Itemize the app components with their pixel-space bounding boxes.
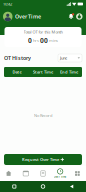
staticText: Total OT for this Month xyxy=(23,29,62,34)
staticText: mins xyxy=(48,38,58,43)
button[interactable]: Leave xyxy=(17,166,34,181)
button[interactable]: More xyxy=(69,166,86,181)
staticText: 10:42 xyxy=(3,1,14,7)
button[interactable]: Request Over Time xyxy=(4,154,82,165)
staticText: End Time xyxy=(60,69,78,75)
button[interactable]: Log out xyxy=(76,13,83,20)
staticText: Date xyxy=(12,69,21,75)
staticText: 00 xyxy=(40,36,48,45)
staticText: Start Time xyxy=(33,69,53,75)
button[interactable]: Claims xyxy=(34,166,52,181)
button[interactable]: June xyxy=(58,54,82,62)
staticText: June xyxy=(60,55,67,61)
button[interactable]: Notifications xyxy=(67,13,75,20)
staticText: Request Over Time xyxy=(22,157,59,162)
staticText: 0 xyxy=(28,36,32,45)
button[interactable]: Profile xyxy=(3,12,12,21)
button[interactable]: Home xyxy=(0,166,17,181)
staticText: Over Time xyxy=(54,175,67,178)
staticText: hrs xyxy=(32,38,40,43)
button[interactable]: Home xyxy=(29,181,57,192)
button[interactable]: Back xyxy=(57,181,86,192)
staticText: No Record xyxy=(34,113,52,118)
button[interactable]: Over Time xyxy=(52,166,69,181)
staticText: Over Time xyxy=(15,13,41,20)
button[interactable]: Recent apps xyxy=(0,181,29,192)
staticText: OT History xyxy=(4,54,31,62)
